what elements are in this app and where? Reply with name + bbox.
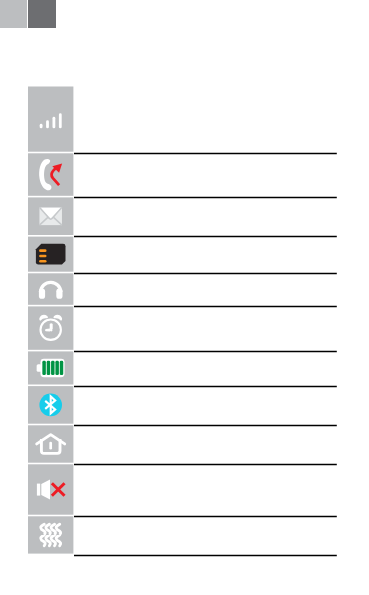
button[interactable]: Signal strength	[28, 87, 337, 154]
button[interactable]: Headset connected	[28, 274, 337, 307]
button[interactable]: Battery level	[28, 352, 337, 387]
button[interactable]: SIM card	[28, 237, 337, 274]
button[interactable]: Vibrate mode	[28, 517, 337, 556]
button[interactable]: Bluetooth on	[28, 387, 337, 426]
button[interactable]: New message	[28, 198, 337, 237]
button[interactable]: Missed call	[28, 154, 337, 198]
button[interactable]: Home network	[28, 426, 337, 465]
button[interactable]: Alarm set	[28, 307, 337, 352]
button[interactable]: Silent mode	[28, 465, 337, 517]
